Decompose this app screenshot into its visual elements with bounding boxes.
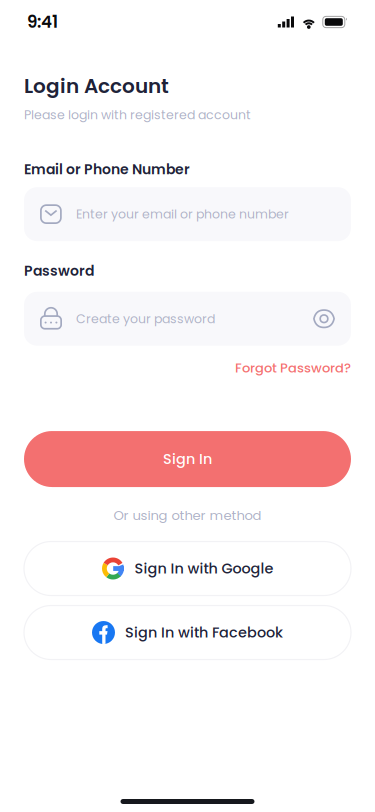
staticText: Sign In [163, 449, 212, 469]
button[interactable]: Forgot Password? [235, 359, 351, 377]
staticText: Please login with registered account [24, 106, 251, 123]
button[interactable]: Show password [313, 308, 335, 330]
button[interactable]: Sign In with Facebook [24, 605, 351, 659]
staticText: Enter your email or phone number [76, 205, 289, 223]
staticText: Sign In with Facebook [125, 622, 283, 643]
staticText: Or using other method [113, 506, 261, 524]
staticText: Email or Phone Number [24, 159, 190, 179]
staticText: Sign In with Google [134, 558, 273, 579]
button[interactable]: Sign In [24, 431, 351, 487]
staticText: Create your password [76, 310, 215, 327]
staticText: 9:41 [27, 10, 58, 34]
staticText: Password [24, 261, 94, 281]
button[interactable]: Sign In with Google [24, 541, 351, 595]
staticText: Login Account [24, 72, 169, 100]
staticText: Forgot Password? [235, 359, 351, 377]
